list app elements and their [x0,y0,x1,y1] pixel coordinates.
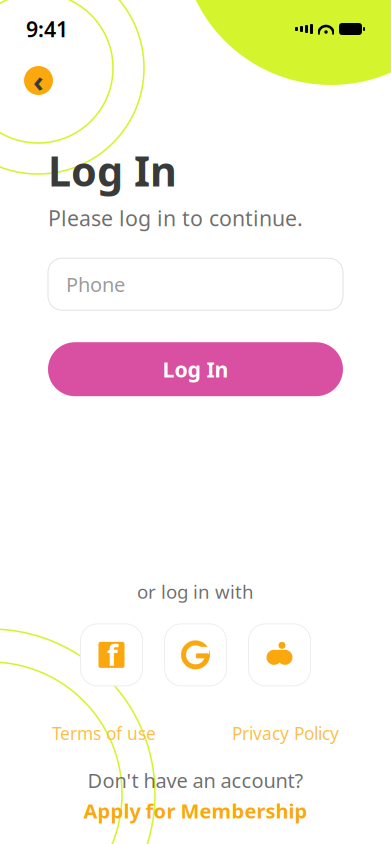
button[interactable]: Terms of use [42,716,166,751]
staticText: ‹ [33,61,44,100]
staticText: Log In [162,355,228,383]
staticText: or log in with [137,579,254,604]
staticText: Log In [48,143,177,198]
staticText: Terms of use [52,722,156,745]
staticText: Apply for Membership [83,797,307,824]
staticText: Phone [66,271,125,297]
button[interactable]: Apple [248,624,310,686]
button[interactable]: Back [24,66,53,95]
staticText: 9:41 [26,15,68,43]
button[interactable]: Apply for Membership [77,795,313,826]
staticText: f [107,636,118,673]
staticText: Privacy Policy [232,722,339,745]
button[interactable]: Facebook [80,624,142,686]
staticText: Don't have an account? [87,767,303,793]
button[interactable]: Google [164,624,226,686]
button[interactable]: Privacy Policy [222,716,349,751]
button[interactable]: Log In [48,342,343,396]
staticText: Please log in to continue. [48,204,303,232]
